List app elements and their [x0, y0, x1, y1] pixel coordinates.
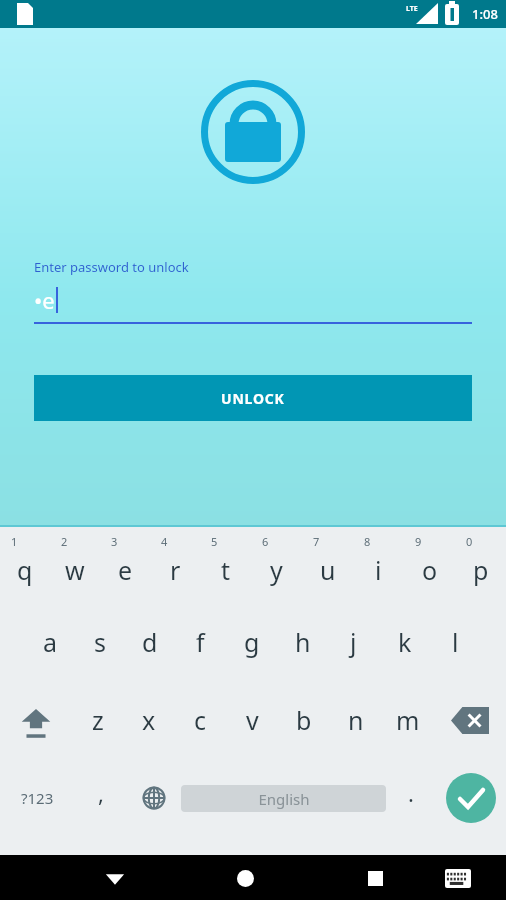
staticText: j — [350, 625, 357, 659]
button[interactable]: , — [75, 759, 127, 837]
button[interactable]: •e — [34, 280, 472, 324]
button[interactable]: 6 — [251, 525, 302, 603]
button[interactable]: Switch keyboard — [436, 856, 480, 900]
staticText: s — [94, 625, 106, 659]
button[interactable]: x — [123, 681, 174, 759]
button[interactable]: z — [72, 681, 123, 759]
staticText: t — [221, 553, 231, 587]
button[interactable]: 7 — [302, 525, 353, 603]
staticText: n — [348, 703, 364, 737]
staticText: g — [244, 625, 260, 659]
button[interactable]: 3 — [100, 525, 150, 603]
button[interactable]: s — [75, 603, 125, 681]
button[interactable]: English — [181, 785, 386, 812]
staticText: x — [142, 703, 156, 737]
staticText: c — [194, 703, 207, 737]
staticText: LTE — [406, 4, 418, 14]
staticText: w — [65, 553, 85, 587]
staticText: 8 — [364, 534, 371, 549]
staticText: 1 — [11, 534, 18, 549]
staticText: 7 — [313, 534, 320, 549]
staticText: 0 — [466, 534, 473, 549]
staticText: f — [196, 625, 205, 659]
staticText: q — [17, 553, 33, 587]
staticText: h — [295, 625, 311, 659]
button[interactable]: j — [328, 603, 379, 681]
staticText: 5 — [211, 534, 218, 549]
staticText: e — [118, 553, 133, 587]
staticText: 3 — [111, 534, 118, 549]
button[interactable]: 0 — [455, 525, 506, 603]
staticText: o — [422, 553, 438, 587]
button[interactable]: 8 — [353, 525, 404, 603]
staticText: b — [296, 703, 312, 737]
button[interactable]: l — [430, 603, 481, 681]
button[interactable]: Shift — [0, 681, 72, 759]
button[interactable]: ?123 — [0, 759, 75, 837]
button[interactable]: Home — [223, 856, 267, 900]
button[interactable]: 5 — [200, 525, 251, 603]
button[interactable]: UNLOCK — [34, 375, 472, 421]
button[interactable]: m — [382, 681, 434, 759]
staticText: 2 — [61, 534, 68, 549]
staticText: . — [408, 778, 414, 808]
button[interactable]: k — [379, 603, 430, 681]
staticText: 9 — [415, 534, 422, 549]
button[interactable]: c — [174, 681, 226, 759]
staticText: •e — [34, 285, 55, 315]
staticText: u — [320, 553, 336, 587]
button[interactable]: Backspace — [434, 681, 506, 759]
staticText: p — [473, 553, 489, 587]
staticText: 1:08 — [472, 5, 498, 23]
button[interactable]: Enter — [436, 759, 506, 837]
button[interactable]: a — [25, 603, 75, 681]
staticText: r — [170, 553, 181, 587]
staticText: ?123 — [21, 788, 54, 808]
staticText: , — [98, 778, 104, 808]
staticText: l — [452, 625, 459, 659]
button[interactable]: g — [226, 603, 277, 681]
staticText: UNLOCK — [221, 389, 285, 408]
button[interactable]: . — [386, 759, 436, 837]
button[interactable]: 9 — [404, 525, 455, 603]
button[interactable]: Hide keyboard — [93, 856, 137, 900]
button[interactable]: 1 — [0, 525, 50, 603]
staticText: i — [375, 553, 382, 587]
staticText: m — [396, 703, 420, 737]
button[interactable]: b — [278, 681, 330, 759]
staticText: z — [92, 703, 104, 737]
button[interactable]: 2 — [50, 525, 100, 603]
button[interactable]: h — [277, 603, 328, 681]
staticText: Enter password to unlock — [34, 258, 189, 276]
button[interactable]: 4 — [150, 525, 200, 603]
staticText: English — [258, 789, 310, 809]
button[interactable]: Recents — [353, 856, 397, 900]
staticText: a — [43, 625, 58, 659]
staticText: v — [246, 703, 259, 737]
button[interactable]: f — [175, 603, 226, 681]
staticText: 6 — [262, 534, 269, 549]
button[interactable]: d — [125, 603, 175, 681]
staticText: d — [142, 625, 158, 659]
staticText: y — [270, 553, 283, 587]
button[interactable]: Change language — [127, 759, 181, 837]
staticText: 4 — [161, 534, 168, 549]
button[interactable]: n — [330, 681, 382, 759]
button[interactable]: v — [226, 681, 278, 759]
staticText: k — [398, 625, 412, 659]
